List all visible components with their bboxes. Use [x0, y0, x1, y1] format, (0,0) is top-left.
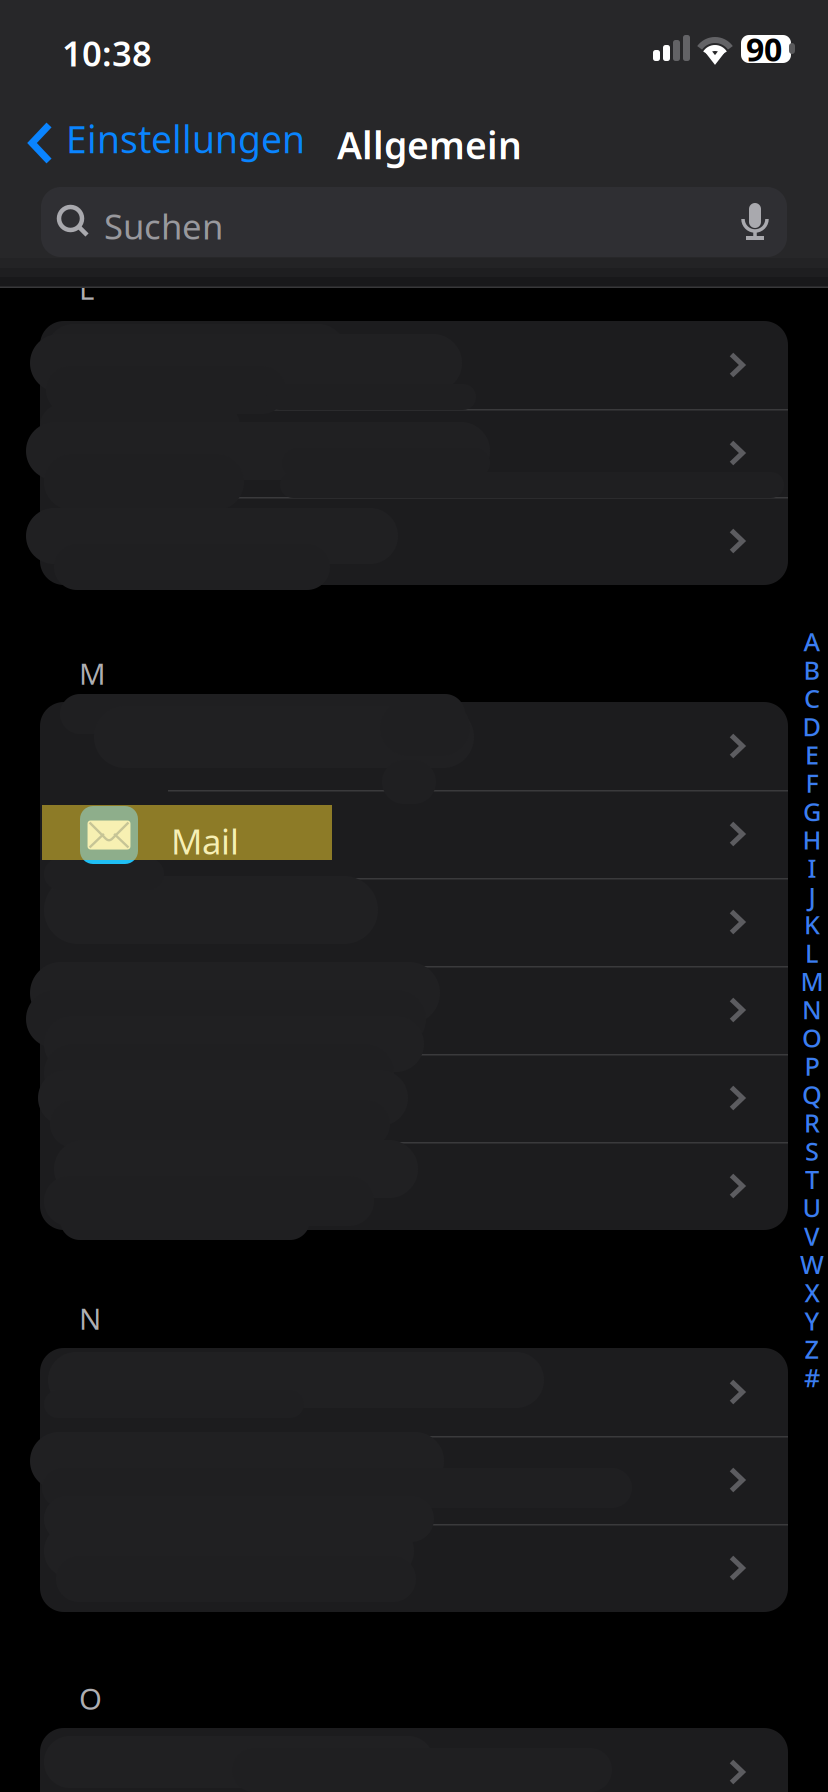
- staticText: B: [803, 653, 820, 687]
- staticText: W: [800, 1247, 824, 1281]
- staticText: O: [79, 1679, 102, 1718]
- staticText: M: [79, 654, 106, 693]
- staticText: I: [807, 851, 816, 885]
- staticText: M: [800, 964, 823, 998]
- staticText: L: [79, 269, 94, 308]
- staticText: U: [802, 1191, 821, 1224]
- staticText: 90: [746, 28, 782, 70]
- staticText: X: [804, 1276, 819, 1309]
- staticText: P: [804, 1049, 819, 1083]
- staticText: T: [805, 1162, 819, 1196]
- staticText: Allgemein: [337, 120, 522, 170]
- staticText: K: [804, 908, 820, 941]
- staticText: 10:38: [62, 30, 152, 76]
- staticText: R: [804, 1106, 820, 1139]
- button[interactable]: Mail: [0, 0, 828, 1792]
- staticText: O: [802, 1021, 822, 1054]
- staticText: Suchen: [104, 203, 223, 249]
- staticText: Einstellungen: [66, 114, 305, 164]
- staticText: A: [803, 625, 820, 658]
- staticText: Z: [804, 1332, 819, 1366]
- staticText: J: [808, 879, 815, 913]
- staticText: V: [804, 1219, 820, 1253]
- staticText: Y: [804, 1304, 819, 1337]
- staticText: E: [805, 738, 819, 771]
- button[interactable]: Section index: [0, 0, 26, 770]
- staticText: L: [805, 936, 819, 970]
- staticText: D: [802, 710, 821, 743]
- staticText: Mail: [171, 818, 239, 864]
- staticText: G: [803, 794, 821, 828]
- staticText: #: [804, 1360, 820, 1394]
- staticText: N: [802, 993, 822, 1026]
- button[interactable]: Einstellungen: [0, 0, 320, 58]
- staticText: C: [804, 681, 820, 715]
- staticText: H: [802, 823, 821, 856]
- staticText: F: [805, 766, 818, 800]
- staticText: S: [805, 1134, 819, 1168]
- staticText: N: [79, 1299, 101, 1338]
- staticText: Q: [802, 1077, 822, 1111]
